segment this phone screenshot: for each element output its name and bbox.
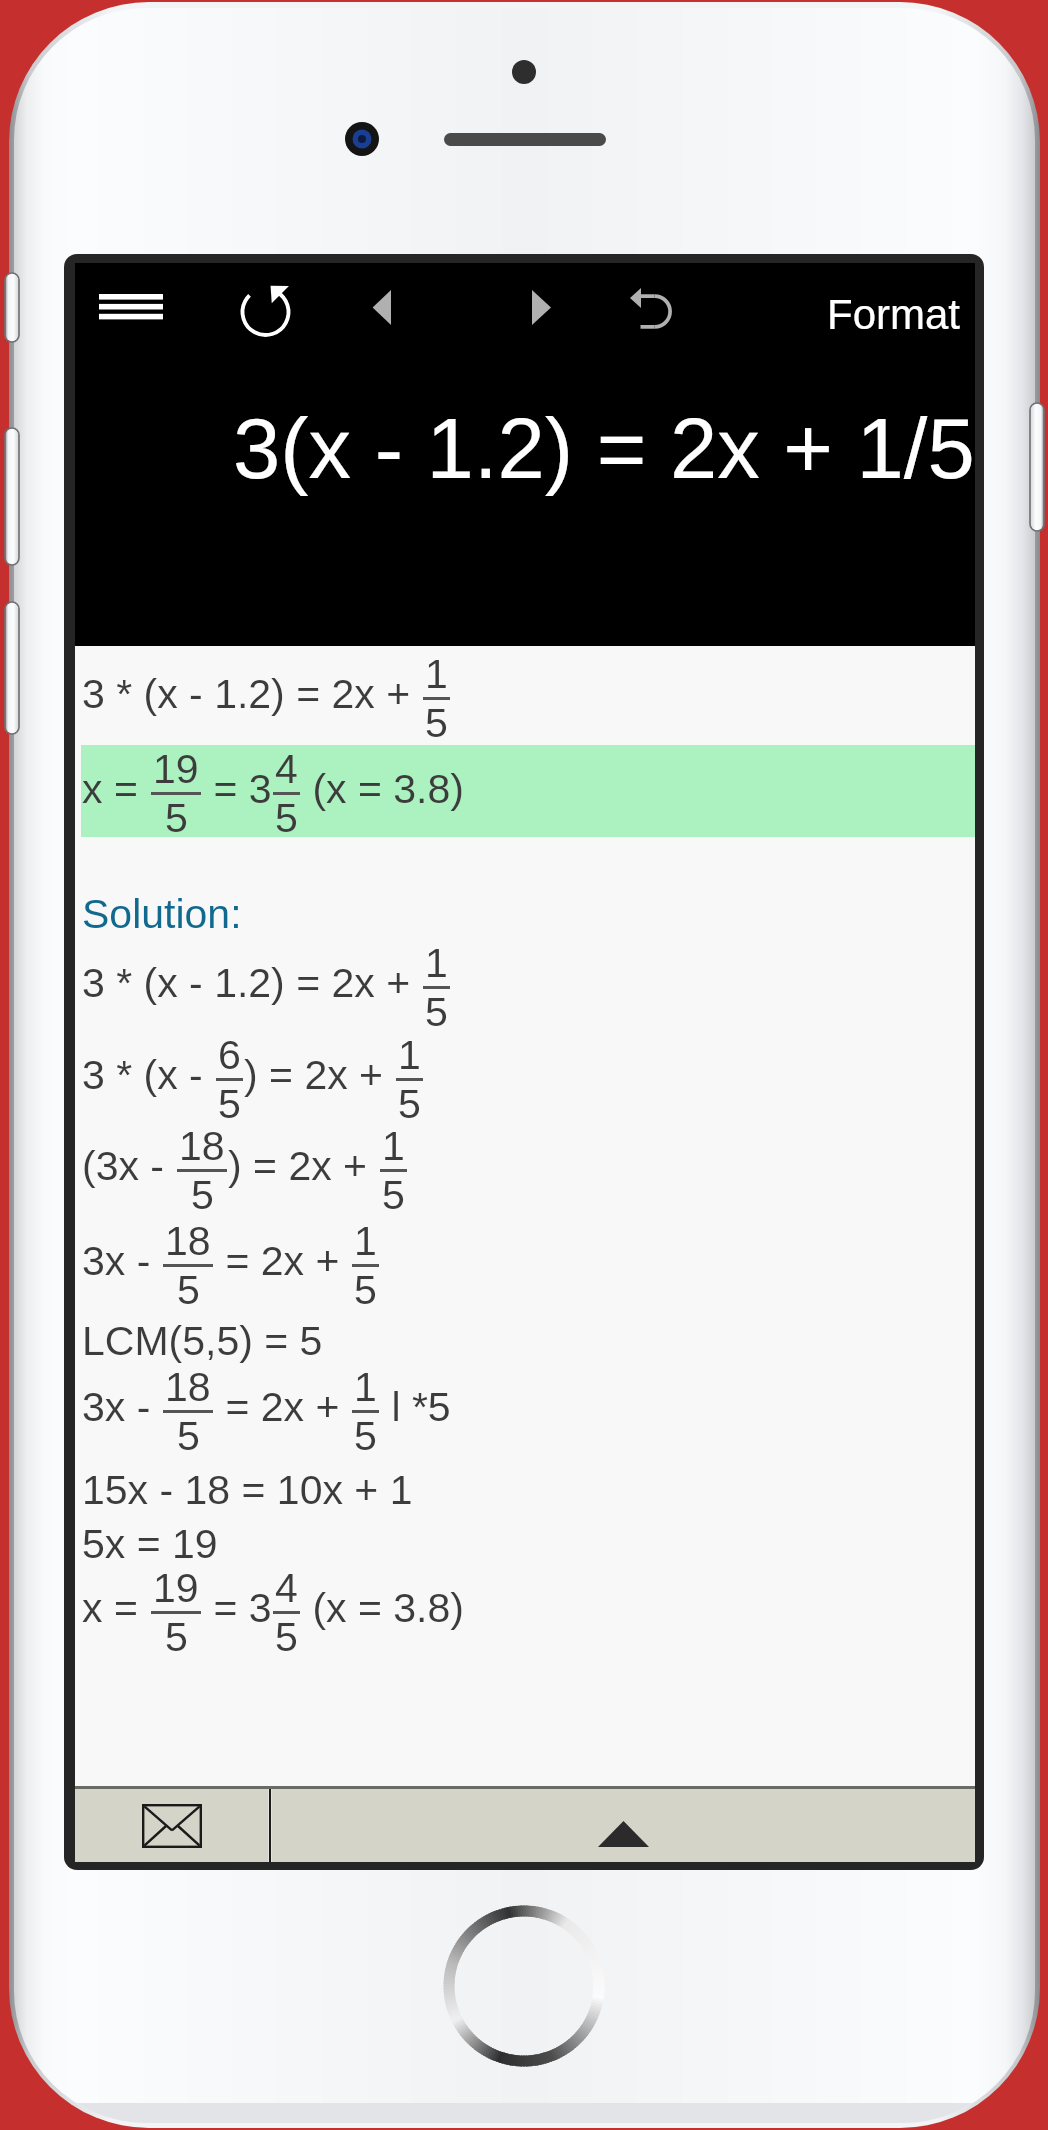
button[interactable]: Refresh	[268, 263, 364, 353]
staticText: 5	[398, 1081, 421, 1125]
staticText: 5	[177, 1267, 200, 1311]
staticText: 5	[425, 700, 448, 744]
staticText: = 3	[202, 766, 272, 812]
button[interactable]: Undo	[653, 263, 749, 353]
staticText: 5	[275, 795, 298, 839]
button[interactable]: Previous	[380, 263, 476, 353]
staticText: 1	[425, 651, 448, 697]
button[interactable]: Mail	[75, 1789, 268, 1862]
staticText: 3 * (x - 1.2) = 2x +	[82, 671, 422, 717]
staticText: 3(x - 1.2) = 2x + 1/5	[233, 401, 975, 496]
staticText: = 3	[202, 1585, 272, 1631]
staticText: 3x -	[82, 1238, 162, 1284]
staticText: 6	[218, 1032, 241, 1078]
staticText: 3 * (x - 1.2) = 2x +	[82, 960, 422, 1006]
staticText: 5	[191, 1172, 214, 1216]
button[interactable]: Menu	[99, 263, 213, 353]
staticText: 5	[177, 1413, 200, 1457]
staticText: 5	[165, 795, 188, 839]
staticText: 19	[153, 746, 199, 792]
staticText: LCM(5,5) = 5	[82, 1318, 323, 1364]
staticText: x =	[82, 1585, 150, 1631]
staticText: 1	[354, 1218, 377, 1264]
staticText: (x = 3.8)	[301, 766, 464, 812]
staticText: = 2x +	[214, 1384, 351, 1430]
staticText: ) = 2x +	[228, 1143, 379, 1189]
staticText: 18	[165, 1218, 211, 1264]
staticText: 4	[275, 746, 298, 792]
staticText: 5	[354, 1413, 377, 1457]
staticText: 5x = 19	[82, 1521, 218, 1567]
staticText: 5	[425, 989, 448, 1033]
staticText: 15x - 18 = 10x + 1	[82, 1467, 413, 1513]
staticText: 1	[425, 940, 448, 986]
staticText: 1	[382, 1123, 405, 1169]
staticText: l *5	[380, 1384, 451, 1430]
staticText: 19	[153, 1565, 199, 1611]
staticText: 3 * (x -	[82, 1052, 215, 1098]
staticText: Solution:	[82, 891, 242, 937]
staticText: x =	[82, 766, 150, 812]
staticText: 5	[382, 1172, 405, 1216]
staticText: 1	[398, 1032, 421, 1078]
staticText: 5	[165, 1614, 188, 1658]
staticText: 3x -	[82, 1384, 162, 1430]
staticText: (3x -	[82, 1143, 176, 1189]
staticText: = 2x +	[214, 1238, 351, 1284]
staticText: 5	[275, 1614, 298, 1658]
button[interactable]: Next	[540, 263, 636, 353]
staticText: 4	[275, 1565, 298, 1611]
staticText: 18	[165, 1364, 211, 1410]
staticText: ) = 2x +	[244, 1052, 395, 1098]
staticText: Format	[827, 291, 961, 338]
staticText: (x = 3.8)	[301, 1585, 464, 1631]
staticText: 5	[218, 1081, 241, 1125]
staticText: 5	[354, 1267, 377, 1311]
staticText: 18	[179, 1123, 225, 1169]
button[interactable]: Format	[811, 269, 976, 359]
button[interactable]: Collapse	[272, 1789, 975, 1862]
staticText: 1	[354, 1364, 377, 1410]
